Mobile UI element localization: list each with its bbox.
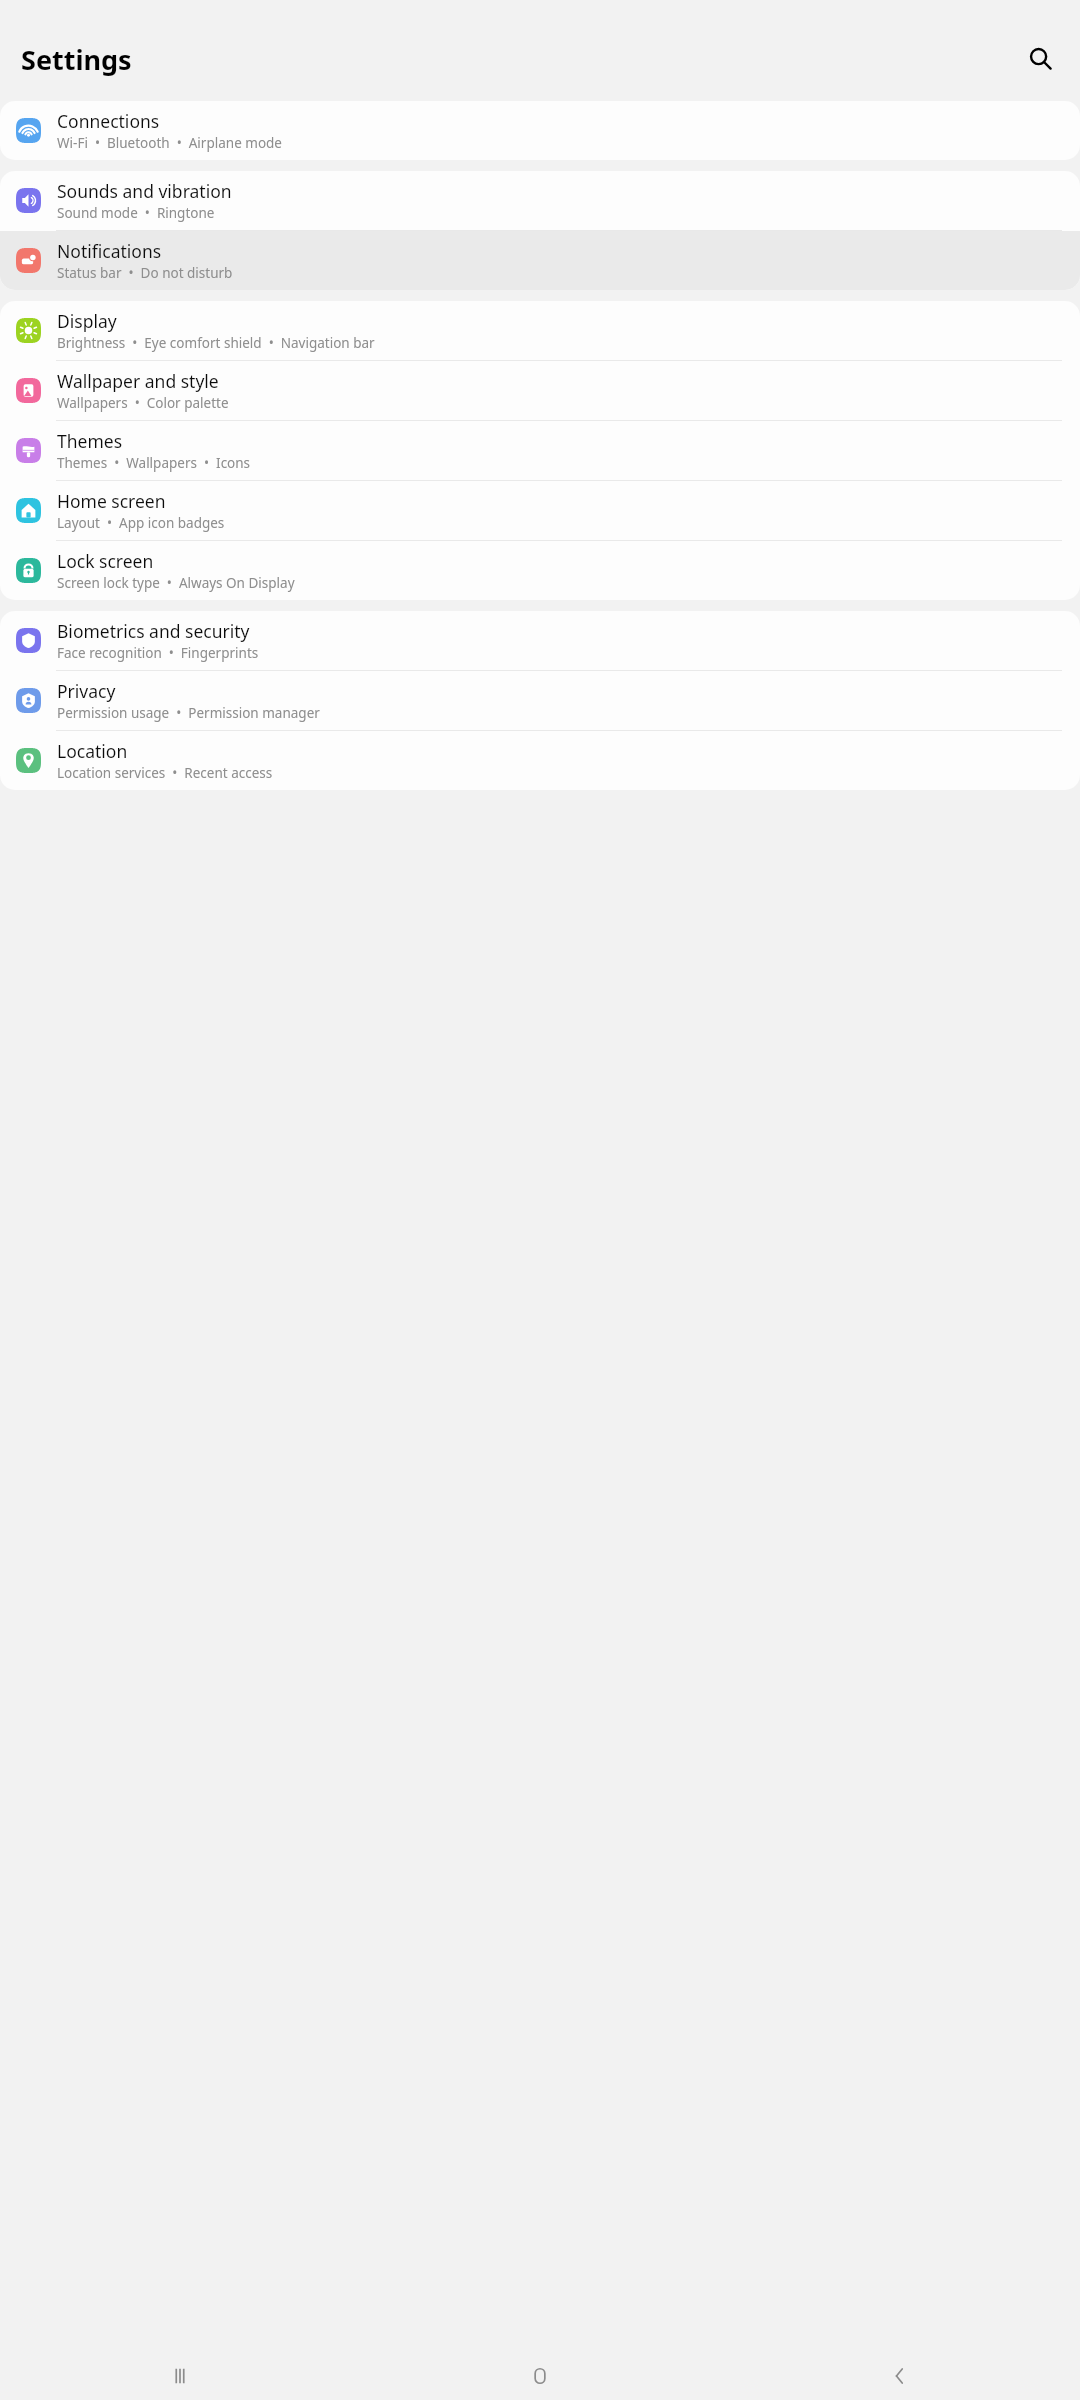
staticText: Location xyxy=(57,739,128,763)
staticText: Biometrics and security xyxy=(57,619,250,643)
button[interactable]: Sounds and vibration xyxy=(0,171,1080,231)
button[interactable]: Connections xyxy=(0,101,1080,160)
staticText: Screen lock type • Always On Display xyxy=(57,574,295,592)
staticText: Themes xyxy=(57,429,123,453)
button[interactable]: Location xyxy=(0,731,1080,790)
staticText: Layout • App icon badges xyxy=(57,514,225,532)
staticText: Themes • Wallpapers • Icons xyxy=(57,454,251,472)
button[interactable]: Search xyxy=(1019,37,1063,81)
staticText: Privacy xyxy=(57,679,116,703)
staticText: Sounds and vibration xyxy=(57,179,232,203)
button[interactable]: Privacy xyxy=(0,671,1080,731)
button[interactable]: Home xyxy=(360,2352,720,2400)
staticText: Wi-Fi • Bluetooth • Airplane mode xyxy=(57,134,282,152)
button[interactable]: Themes xyxy=(0,421,1080,481)
button[interactable]: Back xyxy=(720,2352,1080,2400)
button[interactable]: Home screen xyxy=(0,481,1080,541)
staticText: Connections xyxy=(57,109,160,133)
staticText: Notifications xyxy=(57,239,162,263)
staticText: Home screen xyxy=(57,489,166,513)
button[interactable]: Lock screen xyxy=(0,541,1080,600)
staticText: Face recognition • Fingerprints xyxy=(57,644,259,662)
staticText: Status bar • Do not disturb xyxy=(57,264,233,282)
staticText: Wallpapers • Color palette xyxy=(57,394,229,412)
staticText: Brightness • Eye comfort shield • Naviga… xyxy=(57,334,375,352)
button[interactable]: Wallpaper and style xyxy=(0,361,1080,421)
button[interactable]: Display xyxy=(0,301,1080,361)
staticText: Sound mode • Ringtone xyxy=(57,204,215,222)
staticText: Location services • Recent access xyxy=(57,764,273,782)
button[interactable]: Biometrics and security xyxy=(0,611,1080,671)
staticText: Settings xyxy=(21,41,1019,78)
staticText: Permission usage • Permission manager xyxy=(57,704,320,722)
staticText: Wallpaper and style xyxy=(57,369,219,393)
staticText: Display xyxy=(57,309,117,333)
button[interactable]: Notifications xyxy=(0,231,1080,290)
staticText: Lock screen xyxy=(57,549,154,573)
button[interactable]: Recents xyxy=(0,2352,360,2400)
